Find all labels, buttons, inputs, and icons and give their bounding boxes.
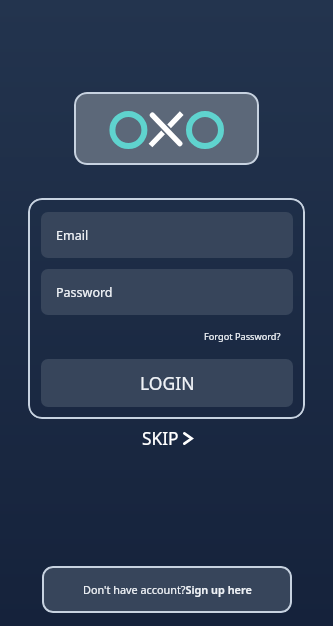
button[interactable]: Don't have account?Sign up here xyxy=(42,566,292,613)
staticText: Don't have account?Sign up here xyxy=(83,582,252,597)
button[interactable]: LOGIN xyxy=(41,359,293,407)
button[interactable]: Email xyxy=(41,212,293,258)
button[interactable]: SKIP xyxy=(142,427,193,449)
staticText: Email xyxy=(56,227,89,244)
staticText: LOGIN xyxy=(140,371,195,395)
other: OXO logo xyxy=(74,92,259,165)
button[interactable]: Password xyxy=(41,269,293,315)
staticText: Password xyxy=(56,284,113,301)
staticText: Forgot Password? xyxy=(204,330,281,343)
button[interactable]: Forgot Password? xyxy=(188,328,281,344)
staticText: SKIP xyxy=(142,427,179,449)
